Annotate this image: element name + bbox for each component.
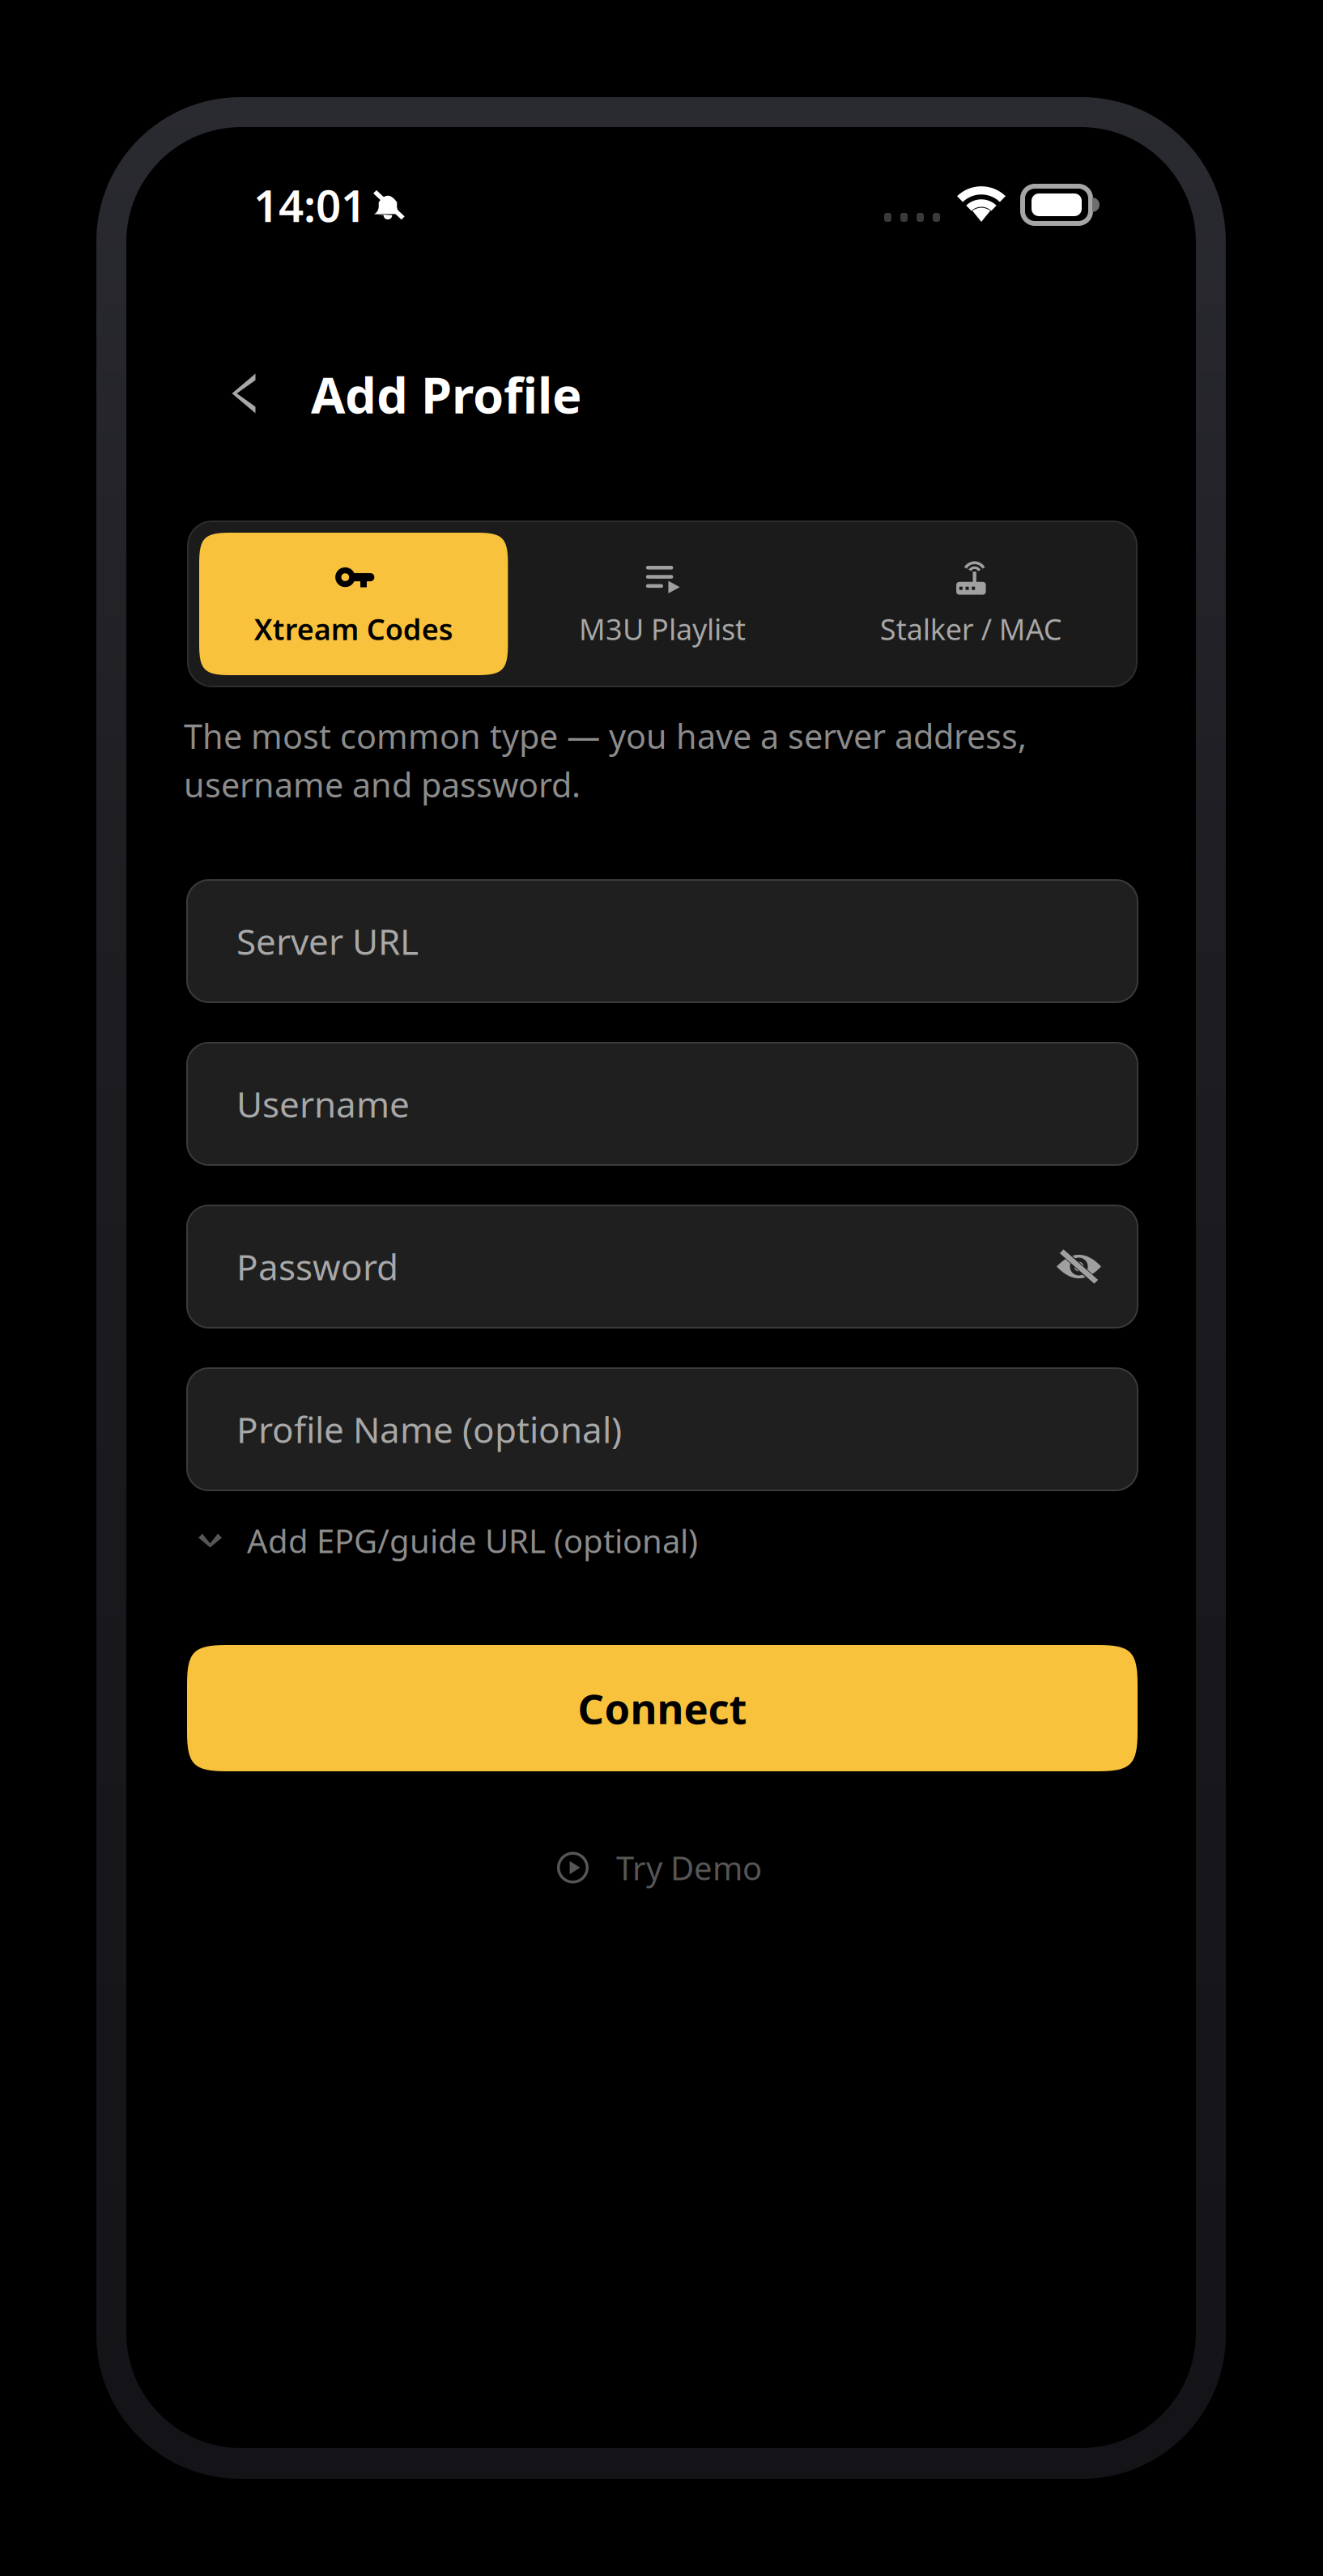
- button[interactable]: Add EPG/guide URL (optional): [198, 1517, 1149, 1564]
- button[interactable]: Server URL: [187, 880, 1138, 1002]
- staticText: 14:01: [253, 175, 366, 234]
- staticText: Password: [236, 1243, 398, 1290]
- staticText: Connect: [578, 1681, 747, 1735]
- button[interactable]: Xtream Codes: [199, 533, 508, 675]
- button[interactable]: Try Demo: [557, 1848, 800, 1887]
- button[interactable]: Password: [187, 1205, 1138, 1328]
- button[interactable]: Profile Name (optional): [187, 1368, 1138, 1490]
- staticText: Profile Name (optional): [236, 1406, 622, 1453]
- button[interactable]: Connect: [187, 1645, 1138, 1771]
- staticText: The most common type — you have a server…: [184, 714, 1027, 807]
- staticText: Stalker / MAC: [880, 610, 1062, 648]
- staticText: Add Profile: [311, 361, 582, 427]
- staticText: Server URL: [236, 917, 419, 965]
- staticText: Try Demo: [616, 1846, 762, 1889]
- staticText: Add EPG/guide URL (optional): [247, 1519, 698, 1562]
- button[interactable]: Stalker / MAC: [817, 533, 1125, 675]
- button[interactable]: Username: [187, 1043, 1138, 1165]
- button[interactable]: M3U Playlist: [508, 533, 817, 675]
- staticText: M3U Playlist: [579, 610, 746, 648]
- button[interactable]: Back: [212, 355, 275, 432]
- staticText: Username: [236, 1080, 410, 1127]
- staticText: Xtream Codes: [254, 610, 453, 648]
